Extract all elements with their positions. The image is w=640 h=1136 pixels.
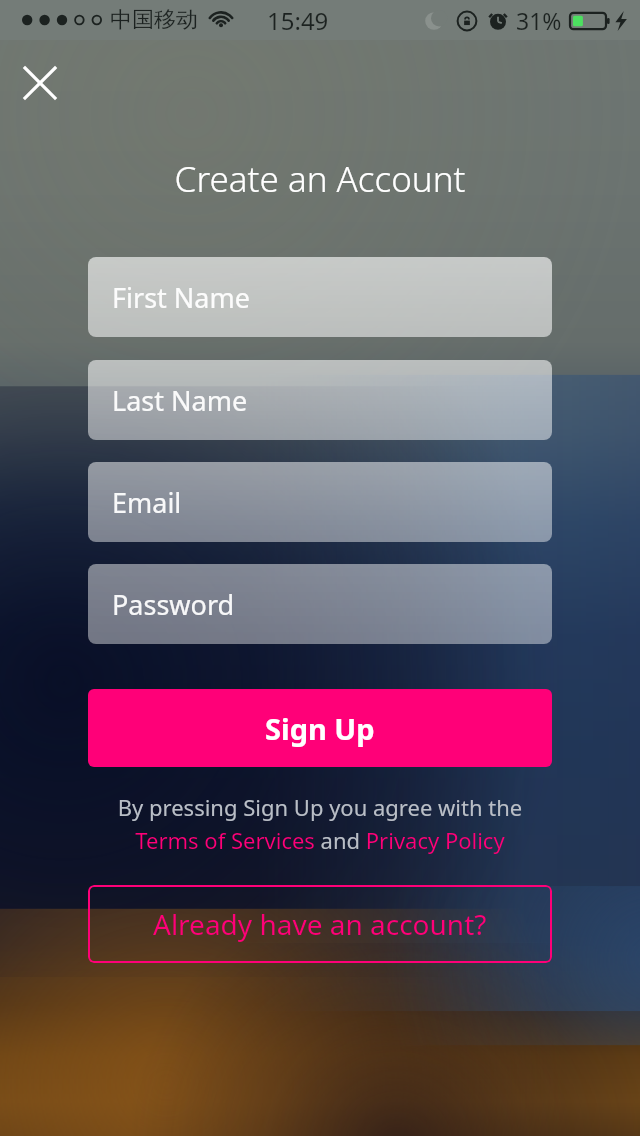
button[interactable]: Already have an account? (88, 885, 552, 963)
staticText: Create an Account (0, 155, 640, 203)
staticText: First Name (112, 279, 250, 316)
staticText: By pressing Sign Up you agree with the (88, 792, 552, 822)
button[interactable]: Email (88, 462, 552, 542)
staticText: 31% (516, 5, 562, 36)
staticText: Last Name (112, 382, 248, 419)
button[interactable]: First Name (88, 257, 552, 337)
staticText: 中国移动 (110, 6, 198, 34)
button[interactable]: Terms of Services and Privacy Policy (88, 825, 552, 855)
staticText: 15:49 (267, 4, 329, 37)
staticText: Sign Up (265, 709, 375, 748)
staticText: Already have an account? (153, 905, 487, 943)
staticText: Email (112, 484, 182, 521)
button[interactable]: Password (88, 564, 552, 644)
button[interactable]: Last Name (88, 360, 552, 440)
staticText: Password (112, 586, 235, 623)
button[interactable]: Sign Up (88, 689, 552, 767)
button[interactable]: Close (14, 57, 66, 109)
